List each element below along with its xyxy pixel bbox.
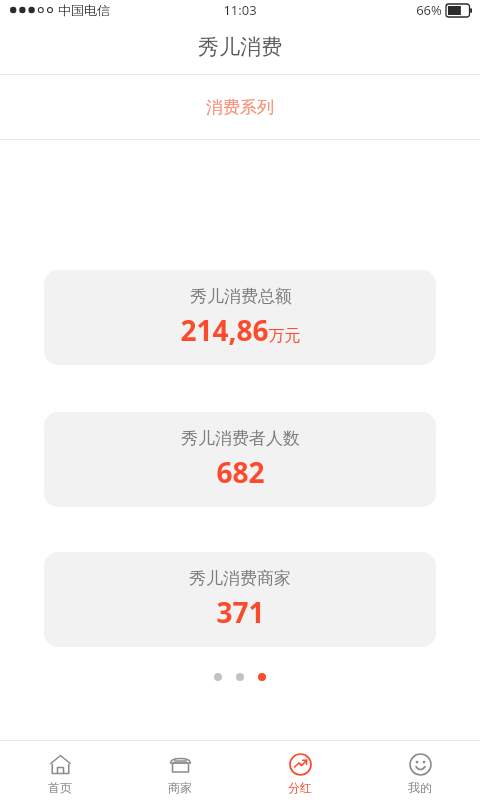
button[interactable]: 秀儿消费总额 — [44, 270, 436, 365]
button[interactable]: 分红 — [240, 746, 360, 795]
staticText: 秀儿消费 — [198, 34, 282, 60]
staticText: 商家 — [168, 780, 192, 795]
button[interactable]: 商家 — [120, 746, 240, 795]
button[interactable]: 秀儿消费者人数 — [44, 412, 436, 507]
button[interactable]: 消费系列 — [0, 75, 480, 139]
staticText: 首页 — [48, 780, 72, 795]
staticText: 214,86万元 — [180, 311, 301, 349]
button[interactable]: 我的 — [360, 746, 480, 795]
staticText: 中国电信 — [58, 2, 110, 18]
button[interactable]: 首页 — [0, 746, 120, 795]
button[interactable]: 秀儿消费商家 — [44, 552, 436, 647]
staticText: 682 — [216, 453, 265, 491]
staticText: 我的 — [408, 780, 432, 795]
staticText: 66% — [416, 1, 442, 19]
staticText: 秀儿消费商家 — [189, 568, 291, 589]
staticText: 分红 — [288, 780, 312, 795]
staticText: 11:03 — [223, 1, 257, 19]
staticText: 371 — [216, 593, 265, 631]
staticText: 秀儿消费总额 — [190, 286, 292, 307]
staticText: 消费系列 — [206, 97, 274, 118]
staticText: 秀儿消费者人数 — [181, 428, 300, 449]
